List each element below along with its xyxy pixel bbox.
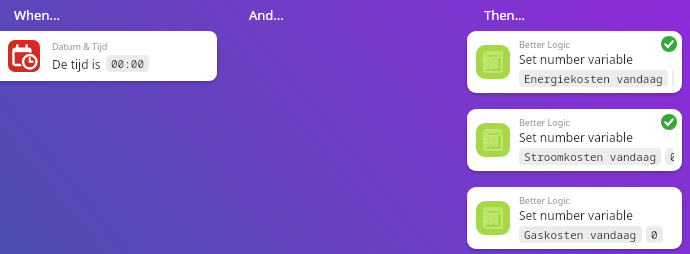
staticText: 0 xyxy=(651,227,658,242)
staticText: Better Logic xyxy=(519,194,570,206)
staticText: Datum & Tijd xyxy=(52,40,108,52)
button[interactable]: Better Logic xyxy=(467,31,682,93)
staticText: Better Logic xyxy=(519,116,570,128)
button[interactable]: Datum & Tijd xyxy=(0,31,217,81)
staticText: Set number variable xyxy=(519,51,633,67)
button[interactable]: Better Logic xyxy=(467,187,682,249)
staticText: Energiekosten vandaag xyxy=(524,71,663,86)
staticText: Set number variable xyxy=(519,207,633,223)
button[interactable]: Enabled xyxy=(661,114,677,130)
staticText: And... xyxy=(249,6,284,24)
staticText: When... xyxy=(14,6,60,24)
staticText: De tijd is xyxy=(52,56,101,72)
staticText: Then... xyxy=(484,6,526,24)
button[interactable]: Better Logic xyxy=(467,109,682,171)
button[interactable]: Enabled xyxy=(661,36,677,52)
staticText: 00:00 xyxy=(111,56,144,71)
staticText: Set number variable xyxy=(519,129,633,145)
staticText: Stroomkosten vandaag xyxy=(524,149,656,164)
staticText: Gaskosten vandaag xyxy=(524,227,637,242)
staticText: Better Logic xyxy=(519,38,570,50)
